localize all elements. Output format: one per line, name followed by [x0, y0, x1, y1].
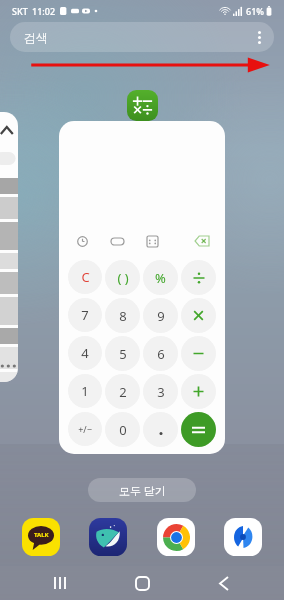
button[interactable]	[181, 298, 216, 333]
button[interactable]: 2	[105, 374, 140, 409]
button[interactable]: History	[59, 121, 225, 454]
staticText: %	[155, 269, 166, 287]
button[interactable]: Home	[120, 566, 164, 600]
button[interactable]: 8	[105, 298, 140, 333]
button[interactable]	[181, 336, 216, 371]
button[interactable]: KakaoTalk	[20, 516, 62, 558]
button[interactable]: 0	[105, 412, 140, 447]
button[interactable]: Chrome	[155, 516, 197, 558]
staticText: 6	[157, 345, 165, 363]
button[interactable]: 7	[68, 298, 102, 332]
button[interactable]: 4	[68, 336, 102, 370]
button[interactable]: Calculator	[127, 90, 158, 121]
button[interactable]: 검색	[10, 22, 274, 52]
staticText: 7	[81, 306, 89, 324]
staticText: 1	[81, 382, 89, 400]
button[interactable]: More options	[244, 22, 274, 52]
button[interactable]: Back	[202, 566, 246, 600]
staticText: 3	[157, 383, 165, 401]
button[interactable]: +/−	[68, 412, 102, 446]
button[interactable]: 모두 닫기	[88, 478, 196, 502]
button[interactable]: Unit converter	[141, 230, 163, 252]
button[interactable]	[143, 412, 178, 447]
staticText: 8	[119, 307, 127, 325]
button[interactable]: ( )	[105, 260, 140, 295]
staticText: 모두 닫기	[119, 483, 166, 498]
staticText: 검색	[24, 30, 48, 45]
button[interactable]: Backspace	[191, 230, 213, 252]
staticText: 5	[119, 345, 127, 363]
button[interactable]: %	[143, 260, 178, 295]
staticText: 11:02	[32, 5, 56, 17]
staticText: 0	[119, 421, 127, 439]
staticText: 4	[81, 344, 89, 362]
button[interactable]: 9	[143, 298, 178, 333]
staticText: 61%	[246, 5, 264, 17]
button[interactable]: 6	[143, 336, 178, 371]
button[interactable]	[0, 112, 18, 382]
staticText: TALK	[34, 531, 49, 539]
button[interactable]	[181, 374, 216, 409]
staticText: ( )	[117, 269, 129, 287]
staticText: C	[81, 268, 90, 286]
button[interactable]	[181, 260, 216, 295]
button[interactable]: History	[71, 230, 93, 252]
button[interactable]: Recents	[38, 566, 82, 600]
staticText: SKT	[12, 5, 28, 17]
button[interactable]: 3	[143, 374, 178, 409]
staticText: 2	[119, 383, 127, 401]
button[interactable]: C	[68, 260, 102, 294]
button[interactable]: Expand	[106, 230, 128, 252]
button[interactable]: Whale browser	[87, 516, 129, 558]
button[interactable]: 5	[105, 336, 140, 371]
button[interactable]: 1	[68, 374, 102, 408]
staticText: 9	[157, 307, 165, 325]
button[interactable]: Toss	[222, 516, 264, 558]
staticText: +/−	[78, 423, 92, 435]
button[interactable]	[181, 412, 216, 447]
